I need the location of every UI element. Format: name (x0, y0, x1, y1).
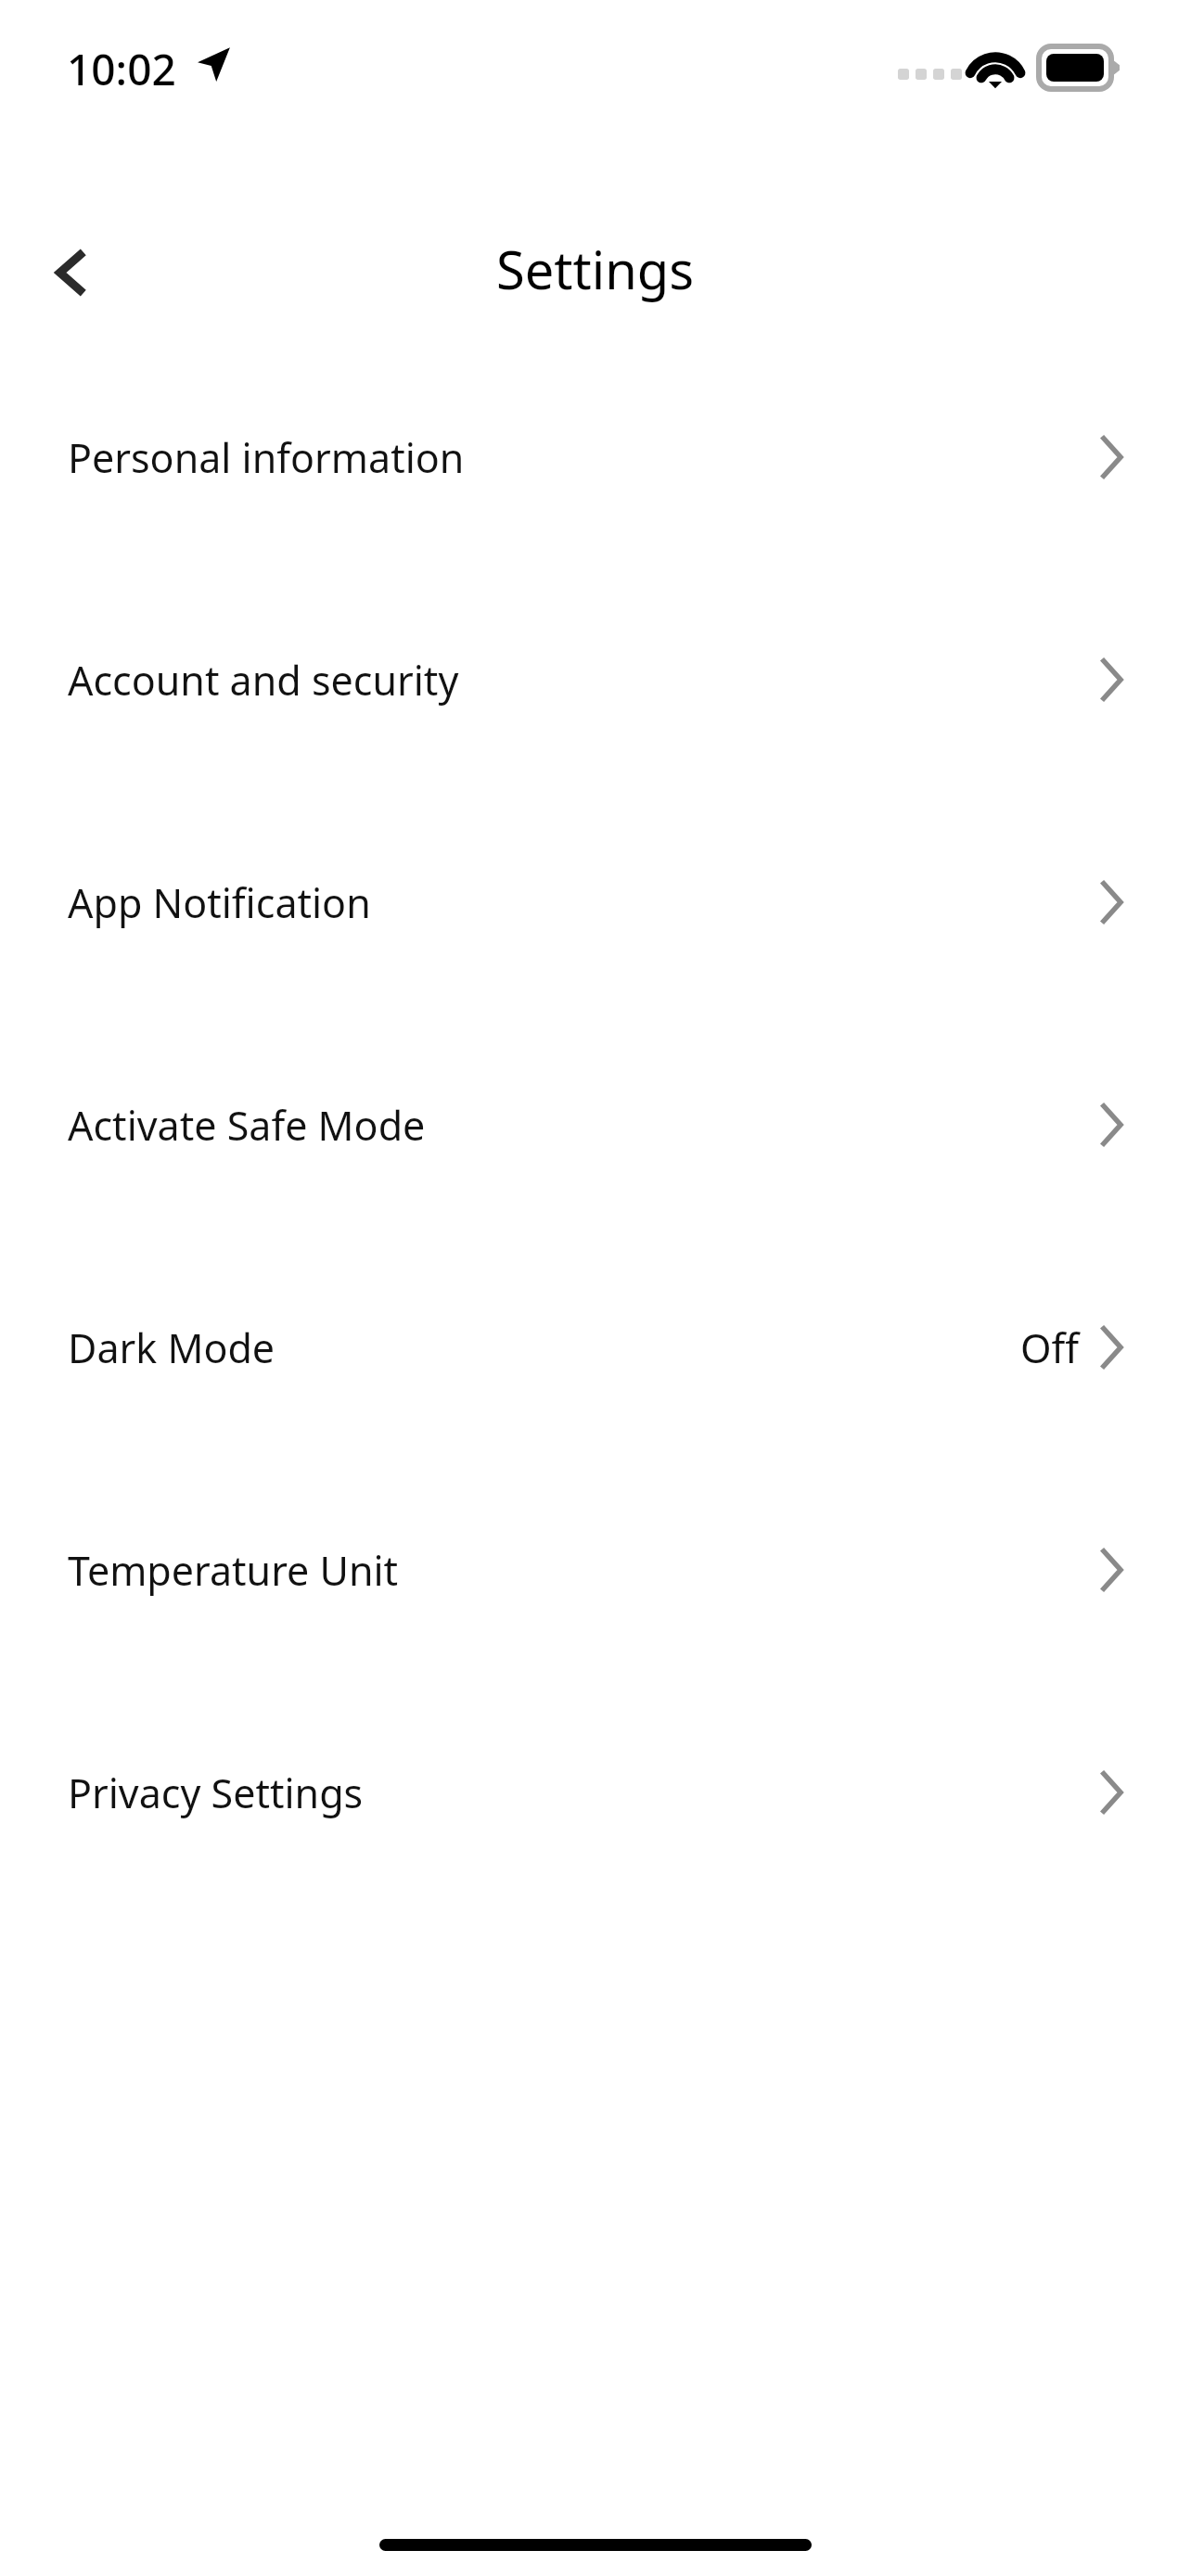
staticText: 10:02 (67, 40, 176, 98)
staticText: App Notification (68, 875, 371, 930)
button[interactable]: Privacy Settings (0, 1681, 1191, 1904)
staticText: Privacy Settings (68, 1766, 364, 1820)
staticText: Off (1020, 1320, 1080, 1375)
staticText: Personal information (68, 430, 465, 485)
button[interactable]: Back (26, 228, 115, 317)
staticText: Dark Mode (68, 1320, 275, 1375)
button[interactable]: Dark Mode (0, 1236, 1191, 1459)
button[interactable]: Account and security (0, 568, 1191, 791)
button[interactable]: Activate Safe Mode (0, 1014, 1191, 1236)
staticText: Activate Safe Mode (68, 1098, 426, 1153)
staticText: Settings (496, 234, 695, 304)
button[interactable]: App Notification (0, 791, 1191, 1014)
staticText: Account and security (68, 653, 459, 708)
button[interactable]: Temperature Unit (0, 1459, 1191, 1681)
staticText: Temperature Unit (68, 1543, 399, 1598)
button[interactable]: Personal information (0, 346, 1191, 568)
